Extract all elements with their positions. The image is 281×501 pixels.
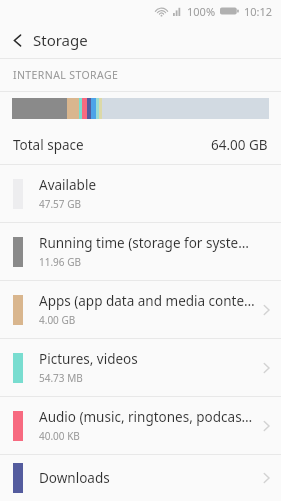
staticText: 47.57 GB xyxy=(39,197,81,211)
button[interactable]: Back xyxy=(0,22,281,58)
staticText: 40.00 KB xyxy=(39,429,80,443)
staticText: Pictures, videos xyxy=(39,350,138,368)
staticText: 10:12 xyxy=(244,4,273,19)
button[interactable]: Available xyxy=(0,165,281,222)
staticText: Downloads xyxy=(39,469,110,487)
staticText: Apps (app data and media content) xyxy=(39,292,256,310)
button[interactable]: Running time (storage for system runni.. xyxy=(0,223,281,280)
staticText: 54.73 MB xyxy=(39,371,83,385)
other: Back xyxy=(12,33,23,48)
button[interactable]: Downloads xyxy=(0,455,281,501)
staticText: Storage xyxy=(33,30,88,50)
staticText: INTERNAL STORAGE xyxy=(13,68,119,82)
staticText: 4.00 GB xyxy=(39,313,76,327)
staticText: 100% xyxy=(187,4,216,19)
button[interactable]: Audio (music, ringtones, podcasts,.. xyxy=(0,397,281,454)
staticText: Available xyxy=(39,176,96,194)
staticText: Running time (storage for system runni.. xyxy=(39,234,256,252)
button[interactable]: Total space xyxy=(0,125,281,164)
button[interactable]: Pictures, videos xyxy=(0,339,281,396)
staticText: Total space xyxy=(13,136,84,154)
staticText: 11.96 GB xyxy=(39,255,81,269)
staticText: 64.00 GB xyxy=(211,136,268,154)
button[interactable]: Apps (app data and media content) xyxy=(0,281,281,338)
staticText: Audio (music, ringtones, podcasts,.. xyxy=(39,408,256,426)
